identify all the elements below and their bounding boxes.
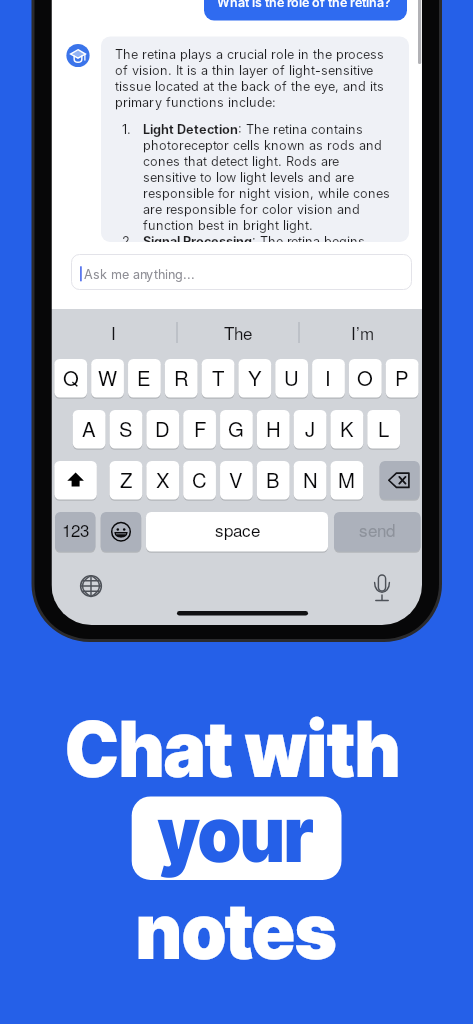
button[interactable]: Chat with your notes — [0, 0, 473, 1024]
